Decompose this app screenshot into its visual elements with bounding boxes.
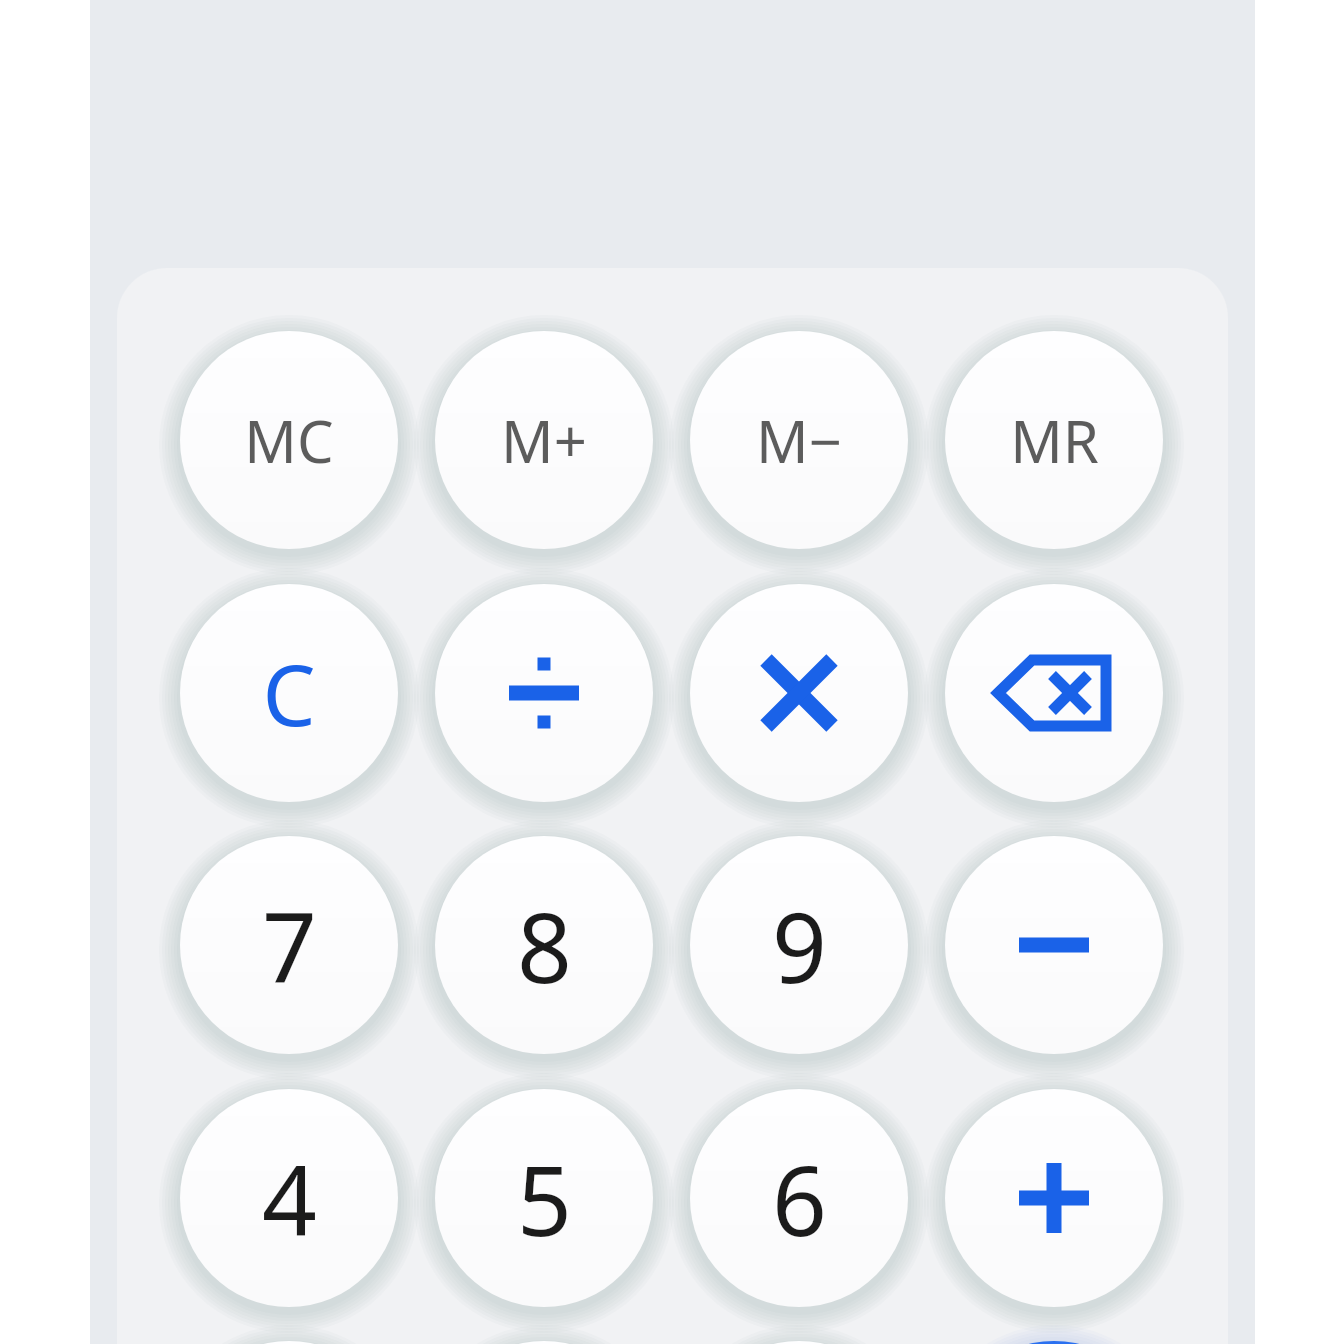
- button[interactable]: 1: [180, 1341, 398, 1344]
- staticText: M−: [756, 401, 842, 480]
- button[interactable]: 8: [435, 836, 653, 1054]
- staticText: 9: [772, 880, 827, 1011]
- button[interactable]: Plus: [945, 1089, 1163, 1307]
- button[interactable]: 3: [690, 1341, 908, 1344]
- button[interactable]: 5: [435, 1089, 653, 1307]
- button[interactable]: Minus: [945, 836, 1163, 1054]
- button[interactable]: MR: [945, 331, 1163, 549]
- button[interactable]: 9: [690, 836, 908, 1054]
- staticText: 6: [772, 1133, 827, 1264]
- staticText: 7: [262, 880, 317, 1011]
- staticText: 8: [517, 880, 572, 1011]
- button[interactable]: Backspace: [945, 584, 1163, 802]
- button[interactable]: 7: [180, 836, 398, 1054]
- button[interactable]: M+: [435, 331, 653, 549]
- staticText: MC: [244, 401, 334, 480]
- button[interactable]: 4: [180, 1089, 398, 1307]
- button[interactable]: Equals: [945, 1341, 1163, 1344]
- button[interactable]: Multiply: [690, 584, 908, 802]
- button[interactable]: M−: [690, 331, 908, 549]
- button[interactable]: MC: [180, 331, 398, 549]
- staticText: 4: [262, 1133, 317, 1264]
- button[interactable]: 2: [435, 1341, 653, 1344]
- button[interactable]: C: [180, 584, 398, 802]
- button[interactable]: 6: [690, 1089, 908, 1307]
- staticText: M+: [501, 401, 587, 480]
- staticText: MR: [1010, 401, 1099, 480]
- button[interactable]: Divide: [435, 584, 653, 802]
- staticText: 5: [517, 1133, 572, 1264]
- staticText: C: [262, 636, 316, 750]
